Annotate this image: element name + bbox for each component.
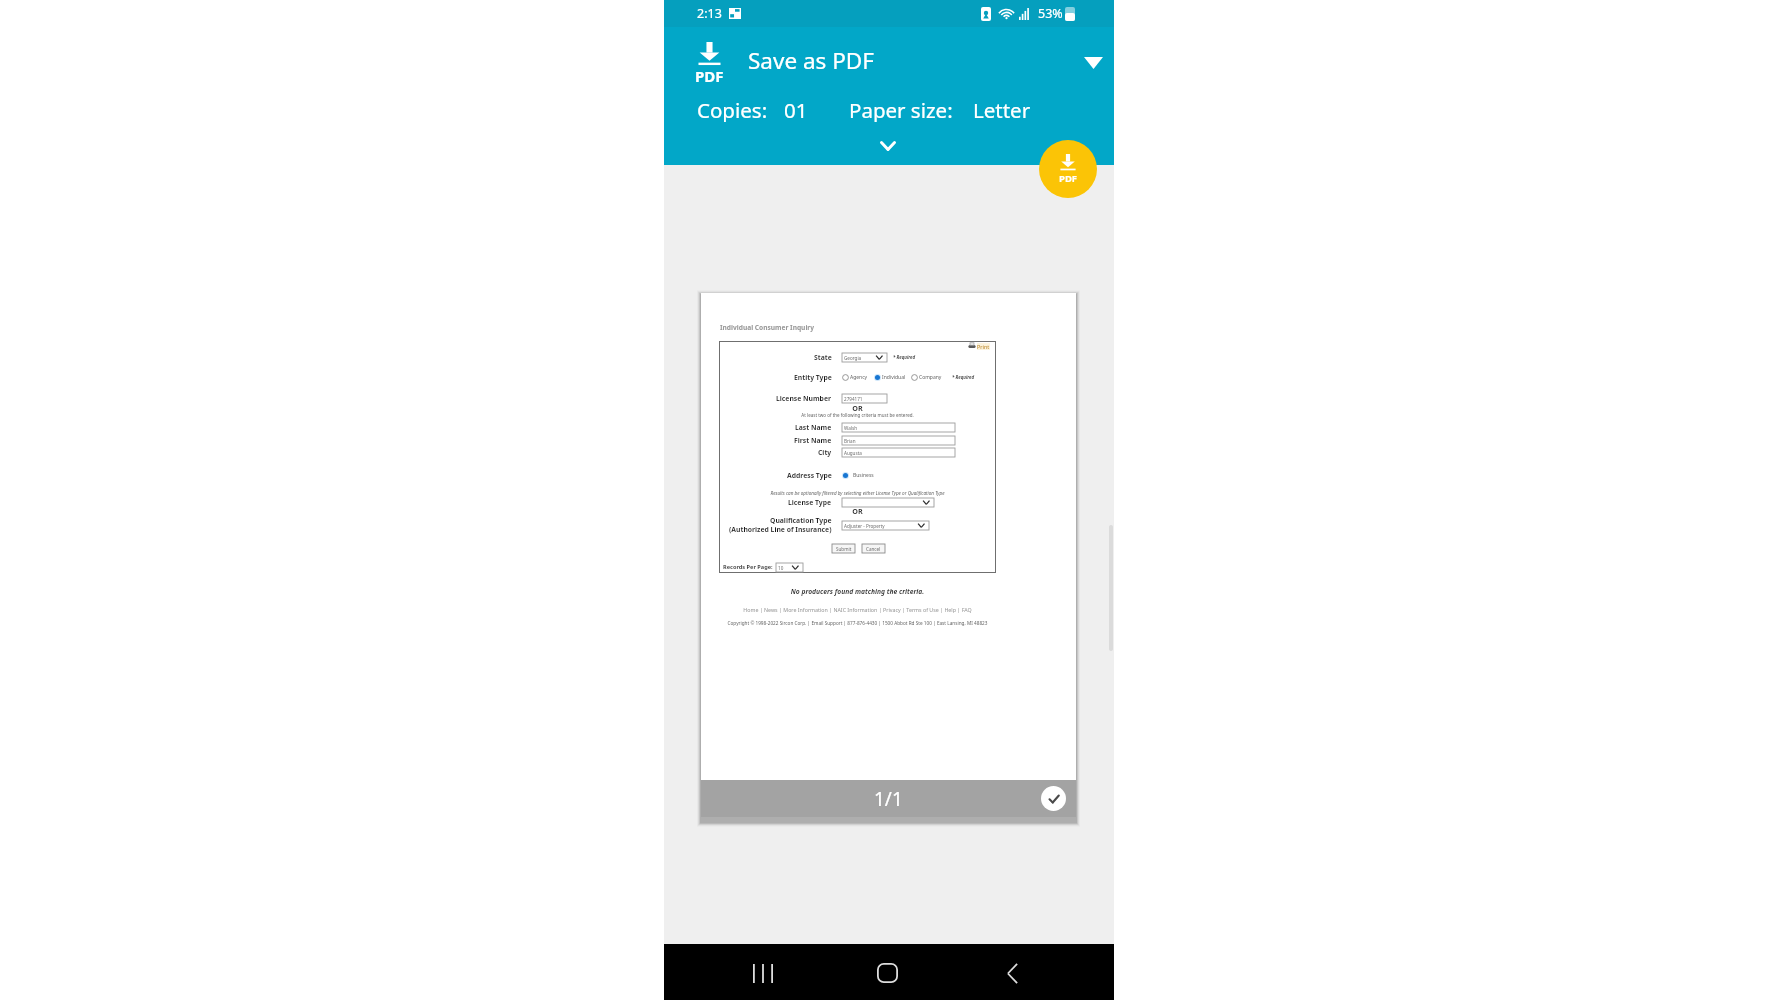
staticText: At least two of the following criteria m… bbox=[719, 412, 996, 418]
staticText: Brian bbox=[844, 438, 856, 444]
button[interactable]: Recent apps bbox=[728, 944, 797, 1000]
staticText: Paper size: bbox=[849, 96, 953, 122]
staticText: First Name bbox=[794, 436, 832, 445]
staticText: Qualification Type bbox=[770, 516, 832, 525]
staticText: Individual Consumer Inquiry bbox=[720, 323, 815, 332]
staticText: Walsh bbox=[844, 425, 857, 431]
staticText: Entity Type bbox=[794, 373, 832, 382]
button[interactable]: Select an option bbox=[842, 498, 934, 507]
staticText: Last Name bbox=[795, 423, 832, 432]
staticText: No producers found matching the criteria… bbox=[719, 587, 996, 596]
staticText: OR bbox=[719, 403, 996, 413]
staticText: Letter bbox=[973, 96, 1031, 122]
staticText: 1/1 bbox=[874, 786, 903, 812]
staticText: 2:13 bbox=[697, 5, 722, 22]
button[interactable]: Back bbox=[978, 944, 1047, 1000]
button[interactable]: Save as PDF bbox=[686, 41, 732, 87]
staticText: Company bbox=[919, 374, 942, 381]
button[interactable]: Cancel bbox=[862, 544, 885, 553]
staticText: 10 bbox=[778, 565, 784, 571]
staticText: Cancel bbox=[866, 546, 881, 552]
staticText: Agency bbox=[850, 374, 868, 381]
staticText: Augusta bbox=[844, 450, 862, 456]
staticText: License Type bbox=[788, 498, 832, 507]
staticText: 53% bbox=[1038, 5, 1063, 22]
button[interactable]: Augusta bbox=[842, 448, 955, 457]
staticText: * Required bbox=[893, 354, 916, 360]
staticText: Adjuster - Property bbox=[844, 523, 885, 529]
button[interactable]: Adjuster - Property bbox=[842, 521, 929, 530]
staticText: * Required bbox=[952, 374, 975, 380]
staticText: Georgia bbox=[844, 355, 862, 361]
button[interactable]: 2794171 bbox=[842, 394, 887, 403]
staticText: Save as PDF bbox=[748, 45, 874, 76]
staticText: Submit bbox=[836, 546, 852, 552]
staticText: Home | News | More Information | NAIC In… bbox=[719, 606, 996, 613]
button[interactable]: Brian bbox=[842, 436, 955, 445]
staticText: State bbox=[814, 353, 832, 362]
staticText: 01 bbox=[784, 96, 808, 122]
staticText: Results can be optionally filtered by se… bbox=[719, 490, 996, 496]
staticText: PDF bbox=[695, 66, 724, 86]
staticText: Print bbox=[977, 343, 990, 350]
staticText: Address Type bbox=[787, 471, 832, 480]
button[interactable]: Save as PDF bbox=[1039, 140, 1097, 198]
staticText: Copyright © 1998-2022 Sircon Corp. | Ema… bbox=[719, 620, 996, 626]
staticText: Copies: bbox=[697, 96, 768, 122]
staticText: Individual bbox=[882, 374, 906, 381]
button[interactable]: Home bbox=[852, 944, 922, 1000]
staticText: Business bbox=[853, 472, 874, 479]
staticText: Records Per Page: bbox=[723, 563, 773, 571]
button[interactable]: Walsh bbox=[842, 423, 955, 432]
button[interactable]: Select printer bbox=[1075, 45, 1111, 81]
button[interactable]: Confirm bbox=[1041, 786, 1066, 811]
button[interactable]: Submit bbox=[832, 544, 855, 553]
staticText: (Authorized Line of Insurance) bbox=[729, 525, 832, 534]
button[interactable]: Expand print options bbox=[663, 131, 1113, 165]
staticText: City bbox=[818, 448, 832, 457]
button[interactable]: Georgia bbox=[842, 353, 887, 362]
staticText: PDF bbox=[1059, 172, 1078, 185]
button[interactable]: Print bbox=[968, 342, 990, 350]
button[interactable]: 10 bbox=[776, 563, 803, 572]
staticText: License Number bbox=[776, 394, 832, 403]
staticText: OR bbox=[719, 506, 996, 516]
staticText: 2794171 bbox=[844, 396, 863, 402]
